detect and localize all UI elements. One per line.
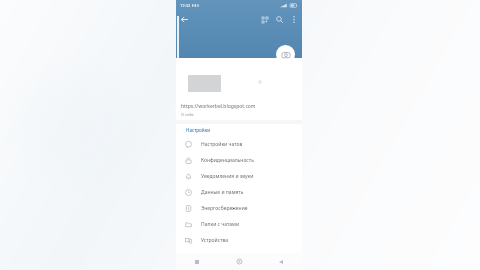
- staticText: О себе: [181, 112, 194, 117]
- staticText: 17:32: [180, 3, 191, 8]
- staticText: Уведомления и звуки: [201, 173, 254, 180]
- staticText: Папки с чатами: [201, 221, 240, 228]
- staticText: Настройки чатов: [201, 141, 243, 148]
- staticText: Настройки: [186, 127, 211, 133]
- staticText: Устройства: [201, 237, 229, 244]
- button[interactable]: More options: [287, 13, 300, 26]
- button[interactable]: Change photo: [276, 45, 295, 64]
- button[interactable]: Энергосбережение: [176, 200, 302, 216]
- staticText: Данные и память: [201, 189, 244, 196]
- button[interactable]: Уведомления и звуки: [176, 168, 302, 184]
- staticText: Энергосбережение: [201, 205, 248, 212]
- button[interactable]: Back: [260, 253, 302, 270]
- button[interactable]: Конфиденциальность: [176, 152, 302, 168]
- button[interactable]: Устройства: [176, 232, 302, 248]
- staticText: https://workerbel.blogspot.com: [181, 103, 256, 110]
- button[interactable]: Back: [176, 11, 192, 27]
- button[interactable]: QR code: [257, 12, 272, 27]
- button[interactable]: Recent apps: [176, 253, 218, 270]
- button[interactable]: Данные и память: [176, 184, 302, 200]
- button[interactable]: Настройки чатов: [176, 136, 302, 152]
- button[interactable]: https://workerbel.blogspot.com: [180, 103, 306, 117]
- button[interactable]: Search: [272, 12, 287, 27]
- button[interactable]: Язык: [176, 248, 302, 264]
- button[interactable]: Home: [218, 253, 260, 270]
- button[interactable]: Папки с чатами: [176, 216, 302, 232]
- staticText: Конфиденциальность: [201, 157, 254, 164]
